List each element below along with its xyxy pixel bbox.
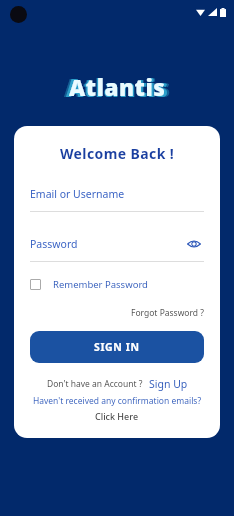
button[interactable]: Sign Up [149, 377, 188, 391]
button[interactable]: Email or Username [30, 187, 204, 212]
staticText: Don't have an Account ? [47, 378, 143, 390]
button[interactable]: Remember Password [30, 276, 148, 293]
staticText: Email or Username [30, 187, 125, 201]
button[interactable]: Show password [184, 234, 204, 254]
staticText: SIGN IN [94, 340, 140, 354]
button[interactable]: Password [30, 234, 204, 262]
button[interactable]: Forgot Password ? [131, 307, 204, 319]
staticText: Haven't received any confirmation emails… [30, 395, 204, 407]
staticText: Sign Up [149, 377, 188, 391]
staticText: Atlantis [64, 70, 171, 104]
staticText: Atlantis [66, 71, 169, 104]
staticText: Atlantis [69, 72, 166, 103]
staticText: Password [30, 237, 184, 251]
button[interactable]: SIGN IN [30, 331, 204, 363]
staticText: Welcome Back ! [30, 144, 204, 163]
button[interactable]: Click Here [95, 410, 139, 422]
staticText: Remember Password [53, 278, 148, 291]
